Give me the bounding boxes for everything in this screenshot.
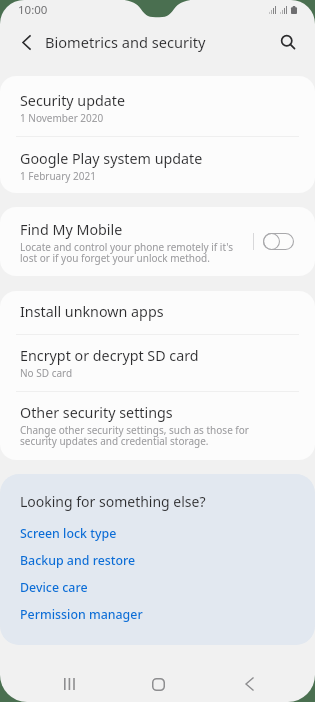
button[interactable]: Screen lock type <box>20 520 315 547</box>
staticText: 10:00 <box>18 2 48 18</box>
staticText: Locate and control your phone remotely i… <box>20 240 233 265</box>
staticText: Permission manager <box>20 606 143 623</box>
button[interactable]: Other security settings <box>0 392 315 460</box>
staticText: 1 November 2020 <box>20 111 104 125</box>
staticText: Install unknown apps <box>20 302 164 321</box>
button[interactable]: Install unknown apps <box>0 291 315 334</box>
staticText: No SD card <box>20 366 73 380</box>
staticText: Google Play system update <box>20 149 203 168</box>
button[interactable]: Back <box>242 676 257 691</box>
button[interactable]: Recent apps <box>62 676 77 691</box>
staticText: 1 February 2021 <box>20 169 96 183</box>
button[interactable]: Find My Mobile <box>0 207 252 276</box>
staticText: Security update <box>20 91 126 110</box>
button[interactable]: Search <box>273 26 303 56</box>
staticText: Device care <box>20 579 88 596</box>
staticText: Screen lock type <box>20 525 117 542</box>
button[interactable]: Google Play system update <box>0 137 315 193</box>
button[interactable]: Security update <box>0 76 315 136</box>
button[interactable]: Permission manager <box>20 601 315 628</box>
button[interactable]: Back <box>10 25 42 57</box>
button[interactable]: Home <box>150 676 166 692</box>
staticText: Change other security settings, such as … <box>20 423 249 448</box>
button[interactable]: Backup and restore <box>20 547 315 574</box>
staticText: Encrypt or decrypt SD card <box>20 346 199 365</box>
staticText: Biometrics and security <box>45 32 206 52</box>
button[interactable]: Find My Mobile toggle <box>253 207 315 276</box>
button[interactable]: Encrypt or decrypt SD card <box>0 335 315 391</box>
button[interactable]: Device care <box>20 574 315 601</box>
staticText: Looking for something else? <box>20 492 206 511</box>
staticText: Backup and restore <box>20 552 136 569</box>
staticText: Other security settings <box>20 403 173 422</box>
staticText: Find My Mobile <box>20 220 123 239</box>
